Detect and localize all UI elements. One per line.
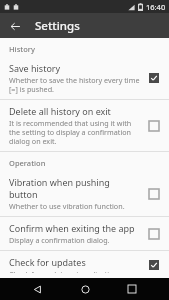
button[interactable]: Unchecked — [145, 117, 163, 135]
staticText: Confirm when exiting the app — [9, 222, 135, 234]
button[interactable]: Save history — [0, 57, 169, 99]
staticText: Whether to use vibration function. — [9, 201, 125, 211]
button[interactable]: Vibration when pushing button — [0, 171, 169, 216]
button[interactable]: Delete all history on exit — [0, 100, 169, 151]
staticText: Save history — [9, 62, 61, 74]
button[interactable]: Back — [5, 16, 25, 36]
button[interactable]: Home — [74, 278, 96, 300]
button[interactable]: Confirm when exiting the app — [0, 217, 169, 250]
button[interactable]: Recent apps — [121, 278, 143, 300]
staticText: Check for updates at application startup… — [9, 269, 140, 273]
staticText: Check for updates — [9, 256, 86, 268]
button[interactable]: Unchecked — [145, 225, 163, 243]
staticText: Vibration when pushing button — [9, 176, 140, 200]
button[interactable]: Back — [26, 278, 48, 300]
staticText: Delete all history on exit — [9, 105, 111, 117]
staticText: History — [9, 44, 35, 54]
button[interactable]: Unchecked — [145, 185, 163, 203]
staticText: It is recommended that using it with the… — [9, 118, 140, 146]
staticText: Operation — [9, 158, 46, 168]
button[interactable]: Checked — [145, 256, 163, 273]
staticText: Display a confirmation dialog. — [9, 235, 110, 245]
button[interactable]: Check for updates — [0, 251, 169, 278]
staticText: Whether to save the history every time [… — [9, 75, 140, 94]
staticText: 16:40 — [146, 2, 166, 12]
button[interactable]: Checked — [145, 69, 163, 87]
staticText: Settings — [35, 18, 80, 34]
